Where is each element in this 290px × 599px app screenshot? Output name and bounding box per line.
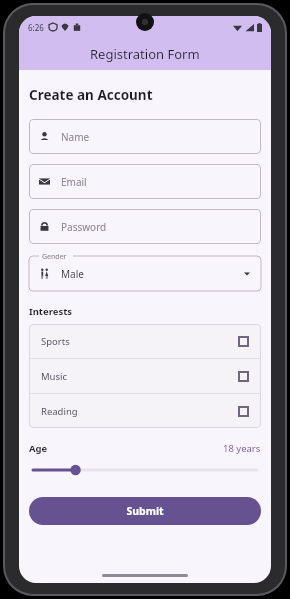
staticText: Submit [126, 504, 164, 518]
staticText: Registration Form [90, 45, 200, 63]
button[interactable]: Email [29, 164, 261, 199]
staticText: Interests [29, 305, 73, 318]
staticText: 18 years [223, 442, 261, 455]
staticText: Sports [41, 335, 70, 348]
staticText: Male [61, 267, 84, 281]
button[interactable]: Reading [29, 394, 261, 428]
staticText: Gender [42, 252, 67, 262]
button[interactable]: Name [29, 119, 261, 154]
staticText: Create an Account [29, 86, 153, 104]
staticText: Name [61, 130, 90, 144]
staticText: Age [29, 442, 48, 455]
button[interactable]: Music [29, 359, 261, 393]
button[interactable]: Sports [29, 324, 261, 358]
staticText: Music [41, 370, 68, 383]
staticText: Reading [41, 405, 78, 418]
staticText: Password [61, 220, 107, 234]
button[interactable]: Male [29, 256, 261, 291]
other: Open dropdown [243, 270, 251, 278]
staticText: 6:26 [28, 22, 44, 33]
button[interactable]: Password [29, 209, 261, 244]
button[interactable]: Submit [29, 497, 261, 525]
button[interactable] [29, 463, 261, 477]
staticText: Email [61, 175, 87, 189]
